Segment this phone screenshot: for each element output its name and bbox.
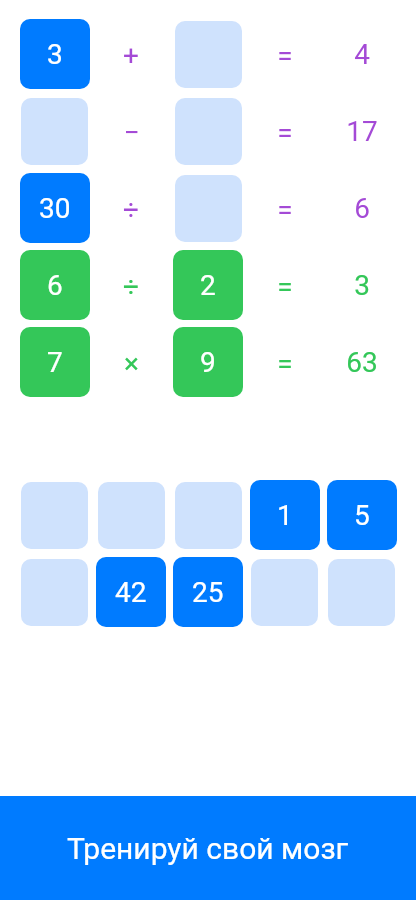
button[interactable]: 5 <box>327 480 397 550</box>
staticText: = <box>277 347 293 380</box>
button[interactable]: 1 <box>250 480 320 550</box>
staticText: 63 <box>346 346 378 379</box>
button[interactable] <box>175 482 242 549</box>
staticText: 4 <box>354 38 370 71</box>
button[interactable]: Тренируй свой мозг <box>0 796 416 900</box>
staticText: 17 <box>346 115 378 148</box>
button[interactable]: 25 <box>173 557 243 627</box>
staticText: 3 <box>354 269 370 302</box>
staticText: 6 <box>354 192 370 225</box>
button[interactable]: 9 <box>173 327 243 397</box>
button[interactable]: 2 <box>173 250 243 320</box>
staticText: 25 <box>192 576 224 609</box>
staticText: = <box>277 270 293 303</box>
button[interactable] <box>175 175 242 242</box>
button[interactable] <box>328 559 395 626</box>
staticText: 2 <box>200 269 216 302</box>
button[interactable] <box>251 559 318 626</box>
staticText: = <box>277 39 293 72</box>
staticText: − <box>123 116 140 149</box>
button[interactable] <box>98 482 165 549</box>
button[interactable]: 3 <box>20 19 90 89</box>
staticText: 3 <box>47 38 63 71</box>
staticText: + <box>123 39 139 72</box>
staticText: 42 <box>115 576 147 609</box>
staticText: 30 <box>39 192 71 225</box>
button[interactable]: 42 <box>96 557 166 627</box>
button[interactable] <box>175 21 242 88</box>
button[interactable] <box>21 559 88 626</box>
staticText: 5 <box>354 499 370 532</box>
staticText: = <box>277 193 293 226</box>
staticText: ÷ <box>123 270 139 303</box>
button[interactable]: 7 <box>20 327 90 397</box>
staticText: = <box>277 116 293 149</box>
staticText: 7 <box>47 346 63 379</box>
staticText: 1 <box>277 499 293 532</box>
button[interactable]: 30 <box>20 173 90 243</box>
staticText: ÷ <box>123 193 139 226</box>
staticText: 9 <box>200 346 216 379</box>
button[interactable] <box>21 98 88 165</box>
staticText: 6 <box>47 269 63 302</box>
button[interactable]: 6 <box>20 250 90 320</box>
button[interactable] <box>21 482 88 549</box>
button[interactable] <box>175 98 242 165</box>
staticText: × <box>124 347 139 380</box>
staticText: Тренируй свой мозг <box>67 831 349 866</box>
